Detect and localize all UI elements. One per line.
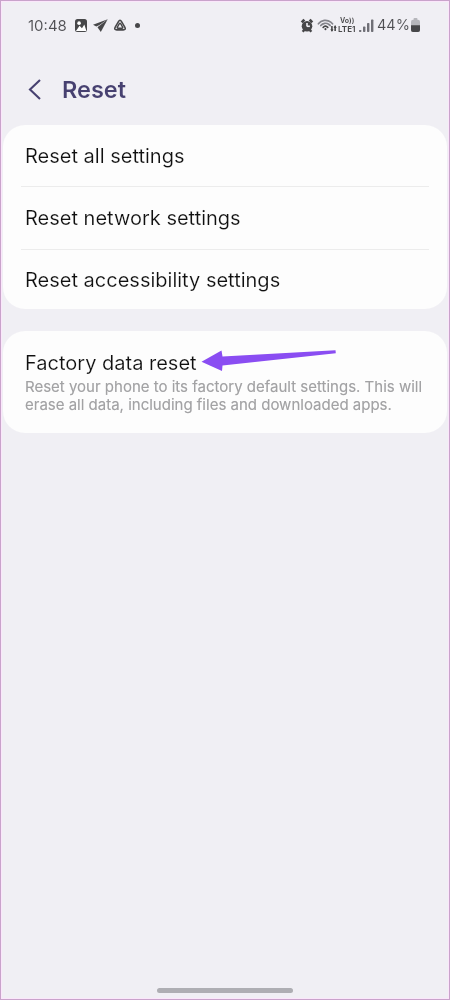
button[interactable]: Reset accessibility settings <box>3 250 447 309</box>
staticText: Reset all settings <box>25 144 185 168</box>
staticText: Reset network settings <box>25 206 241 230</box>
button[interactable]: Factory data reset <box>3 331 447 433</box>
button[interactable]: Reset all settings <box>3 125 447 186</box>
staticText: 10:48 <box>28 16 67 34</box>
staticText: Reset accessibility settings <box>25 268 281 292</box>
button[interactable]: Reset network settings <box>3 187 447 249</box>
staticText: Reset your phone to its factory default … <box>25 377 425 413</box>
staticText: Factory data reset <box>25 351 197 375</box>
staticText: 44% <box>377 16 410 34</box>
staticText: Vo)) <box>340 16 355 24</box>
button[interactable]: Back <box>3 65 51 113</box>
staticText: Reset <box>62 75 127 103</box>
staticText: LTE1 <box>338 24 356 34</box>
